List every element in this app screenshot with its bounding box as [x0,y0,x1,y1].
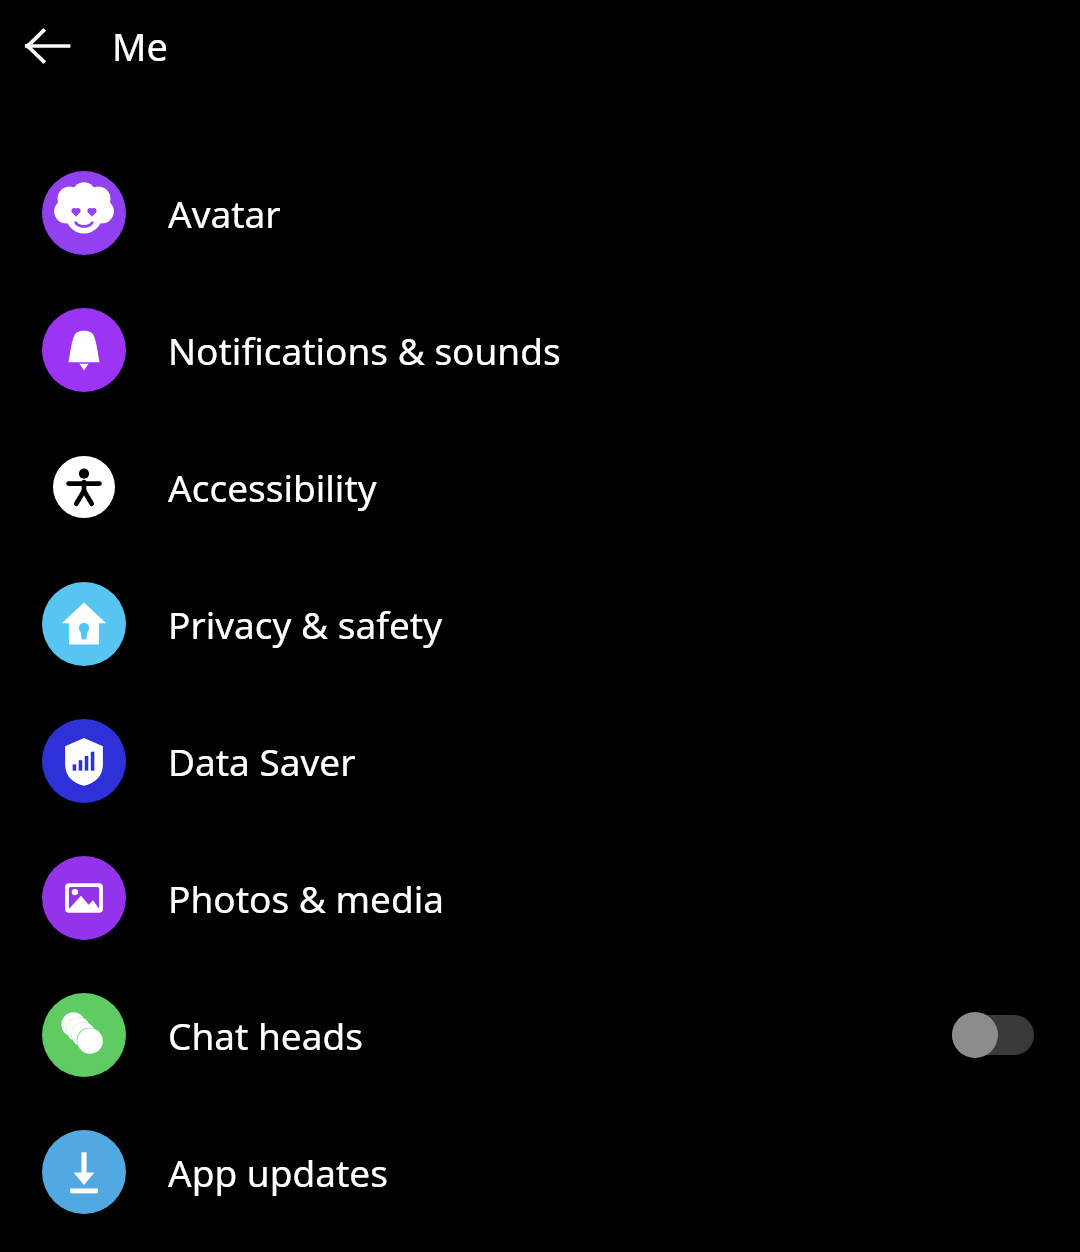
button[interactable]: Photos & media [0,829,1080,966]
staticText: Me [112,20,168,72]
button[interactable]: Avatar [0,144,1080,281]
button[interactable]: Back [14,13,80,79]
staticText: Accessibility [168,462,377,512]
staticText: Photos & media [168,873,444,923]
staticText: App updates [168,1147,388,1197]
button[interactable]: Accessibility [0,418,1080,555]
staticText: Chat heads [168,1010,363,1060]
button[interactable]: Notifications & sounds [0,281,1080,418]
staticText: Privacy & safety [168,599,443,649]
button[interactable]: App updates [0,1103,1080,1240]
button[interactable]: Privacy & safety [0,555,1080,692]
staticText: Avatar [168,188,281,238]
button[interactable]: Chat heads toggle [952,1012,1034,1058]
staticText: Notifications & sounds [168,325,561,375]
button[interactable]: Data Saver [0,692,1080,829]
button[interactable]: Chat heads [0,966,1080,1103]
staticText: Data Saver [168,736,356,786]
